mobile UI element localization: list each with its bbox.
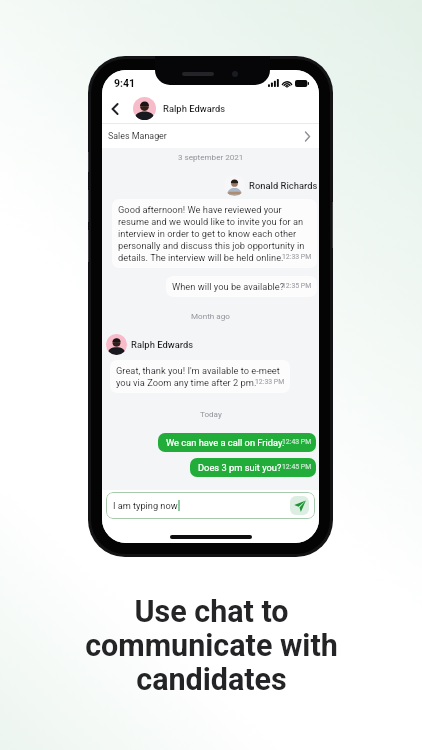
button[interactable]: Back: [106, 99, 124, 119]
button[interactable]: Does 3 pm suit you?: [190, 458, 316, 477]
staticText: Month ago: [191, 311, 230, 320]
staticText: 12:35 PM: [282, 282, 312, 290]
button[interactable]: When will you be available?: [166, 276, 317, 297]
staticText: 12:33 PM: [255, 378, 285, 386]
staticText: 3 september 2021: [178, 152, 244, 161]
button[interactable]: Good afternoon! We have reviewed your re…: [112, 199, 317, 268]
button[interactable]: Back: [102, 95, 319, 122]
staticText: Today: [200, 409, 222, 418]
staticText: When will you be available?: [172, 281, 285, 292]
staticText: Ralph Edwards: [163, 103, 226, 114]
staticText: We can have a call on Friday.: [166, 437, 285, 448]
button[interactable]: Ronald Richards: [224, 175, 318, 196]
button[interactable]: I am typing now: [106, 492, 315, 519]
staticText: Does 3 pm suit you?: [198, 462, 283, 473]
staticText: 12:33 PM: [282, 253, 312, 261]
staticText: Ronald Richards: [249, 180, 318, 191]
staticText: Ralph Edwards: [131, 339, 194, 350]
button[interactable]: Ralph Edwards: [106, 334, 194, 355]
button[interactable]: Great, thank you! I'm available to e-mee…: [110, 360, 290, 393]
staticText: 9:41: [114, 77, 136, 89]
staticText: 12:45 PM: [282, 463, 312, 471]
staticText: I am typing now: [113, 500, 178, 511]
staticText: Use chat to communicate with candidates: [85, 594, 338, 697]
button[interactable]: Sales Manager: [102, 124, 319, 148]
staticText: Good afternoon! We have reviewed your re…: [118, 204, 312, 263]
staticText: 12:43 PM: [282, 438, 312, 446]
button[interactable]: Send: [290, 496, 309, 515]
button[interactable]: We can have a call on Friday.: [158, 433, 316, 452]
staticText: Great, thank you! I'm available to e-mee…: [116, 365, 284, 388]
staticText: Sales Manager: [108, 131, 167, 141]
